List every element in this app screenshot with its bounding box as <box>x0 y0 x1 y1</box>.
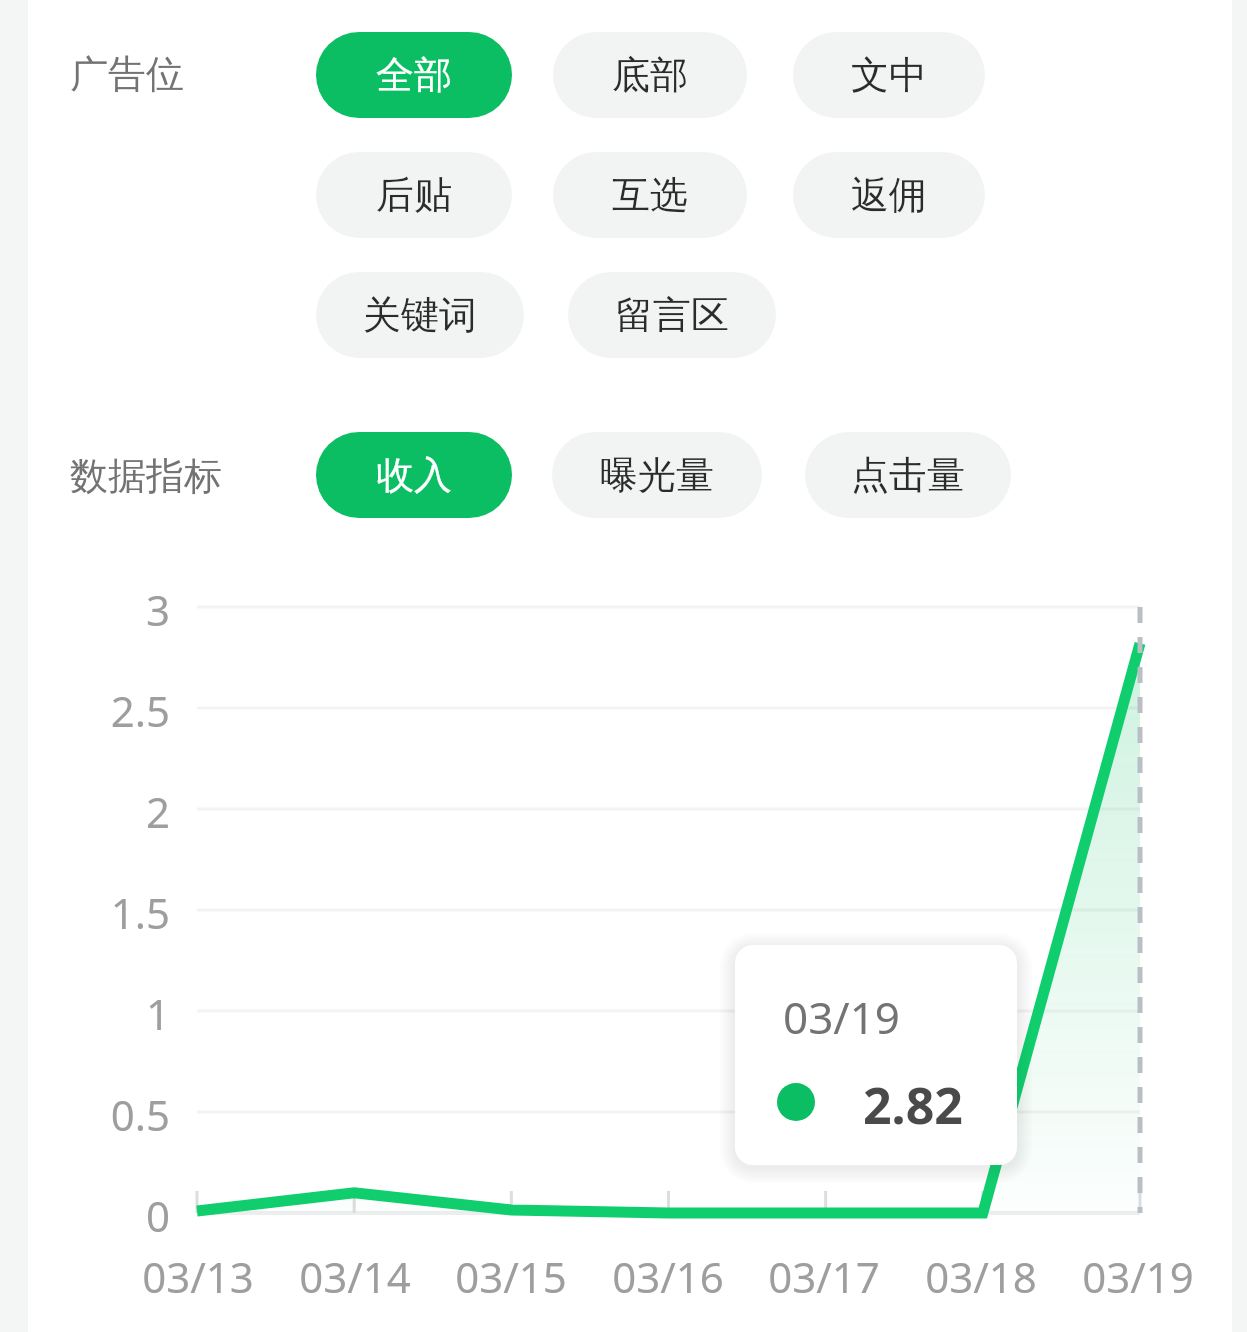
staticText: 03/17 <box>768 1248 880 1305</box>
staticText: 0.5 <box>110 1086 170 1143</box>
button[interactable]: 底部 <box>553 32 747 118</box>
button[interactable]: 文中 <box>793 32 985 118</box>
staticText: 03/19 <box>783 987 901 1047</box>
staticText: 1 <box>145 985 170 1042</box>
button[interactable]: 曝光量 <box>552 432 762 518</box>
button[interactable]: 全部 <box>316 32 512 118</box>
staticText: 后贴 <box>376 171 452 219</box>
staticText: 留言区 <box>615 291 729 339</box>
staticText: 曝光量 <box>600 451 714 499</box>
staticText: 1.5 <box>110 884 170 941</box>
staticText: 收入 <box>376 451 452 499</box>
staticText: 03/19 <box>1082 1248 1194 1305</box>
staticText: 全部 <box>376 51 452 99</box>
staticText: 互选 <box>612 171 688 219</box>
staticText: 数据指标 <box>70 452 222 500</box>
button[interactable]: 留言区 <box>568 272 776 358</box>
staticText: 03/18 <box>925 1248 1037 1305</box>
staticText: 关键词 <box>363 291 477 339</box>
button[interactable]: 点击量 <box>805 432 1011 518</box>
staticText: 文中 <box>851 51 927 99</box>
staticText: 底部 <box>612 51 688 99</box>
staticText: 2.5 <box>110 682 170 739</box>
staticText: 03/15 <box>455 1248 567 1305</box>
staticText: 2.82 <box>863 1071 963 1139</box>
staticText: 03/14 <box>299 1248 411 1305</box>
staticText: 03/16 <box>612 1248 724 1305</box>
button[interactable]: 收入 <box>316 432 512 518</box>
button[interactable]: 03/19 <box>735 945 1017 1165</box>
staticText: 点击量 <box>851 451 965 499</box>
staticText: 03/13 <box>142 1248 254 1305</box>
staticText: 广告位 <box>70 50 184 98</box>
button[interactable]: 后贴 <box>316 152 512 238</box>
staticText: 2 <box>145 783 170 840</box>
staticText: 返佣 <box>851 171 927 219</box>
staticText: 3 <box>145 581 170 638</box>
button[interactable]: 返佣 <box>793 152 985 238</box>
button[interactable]: 互选 <box>553 152 747 238</box>
staticText: 0 <box>145 1187 170 1244</box>
button[interactable]: 关键词 <box>316 272 524 358</box>
